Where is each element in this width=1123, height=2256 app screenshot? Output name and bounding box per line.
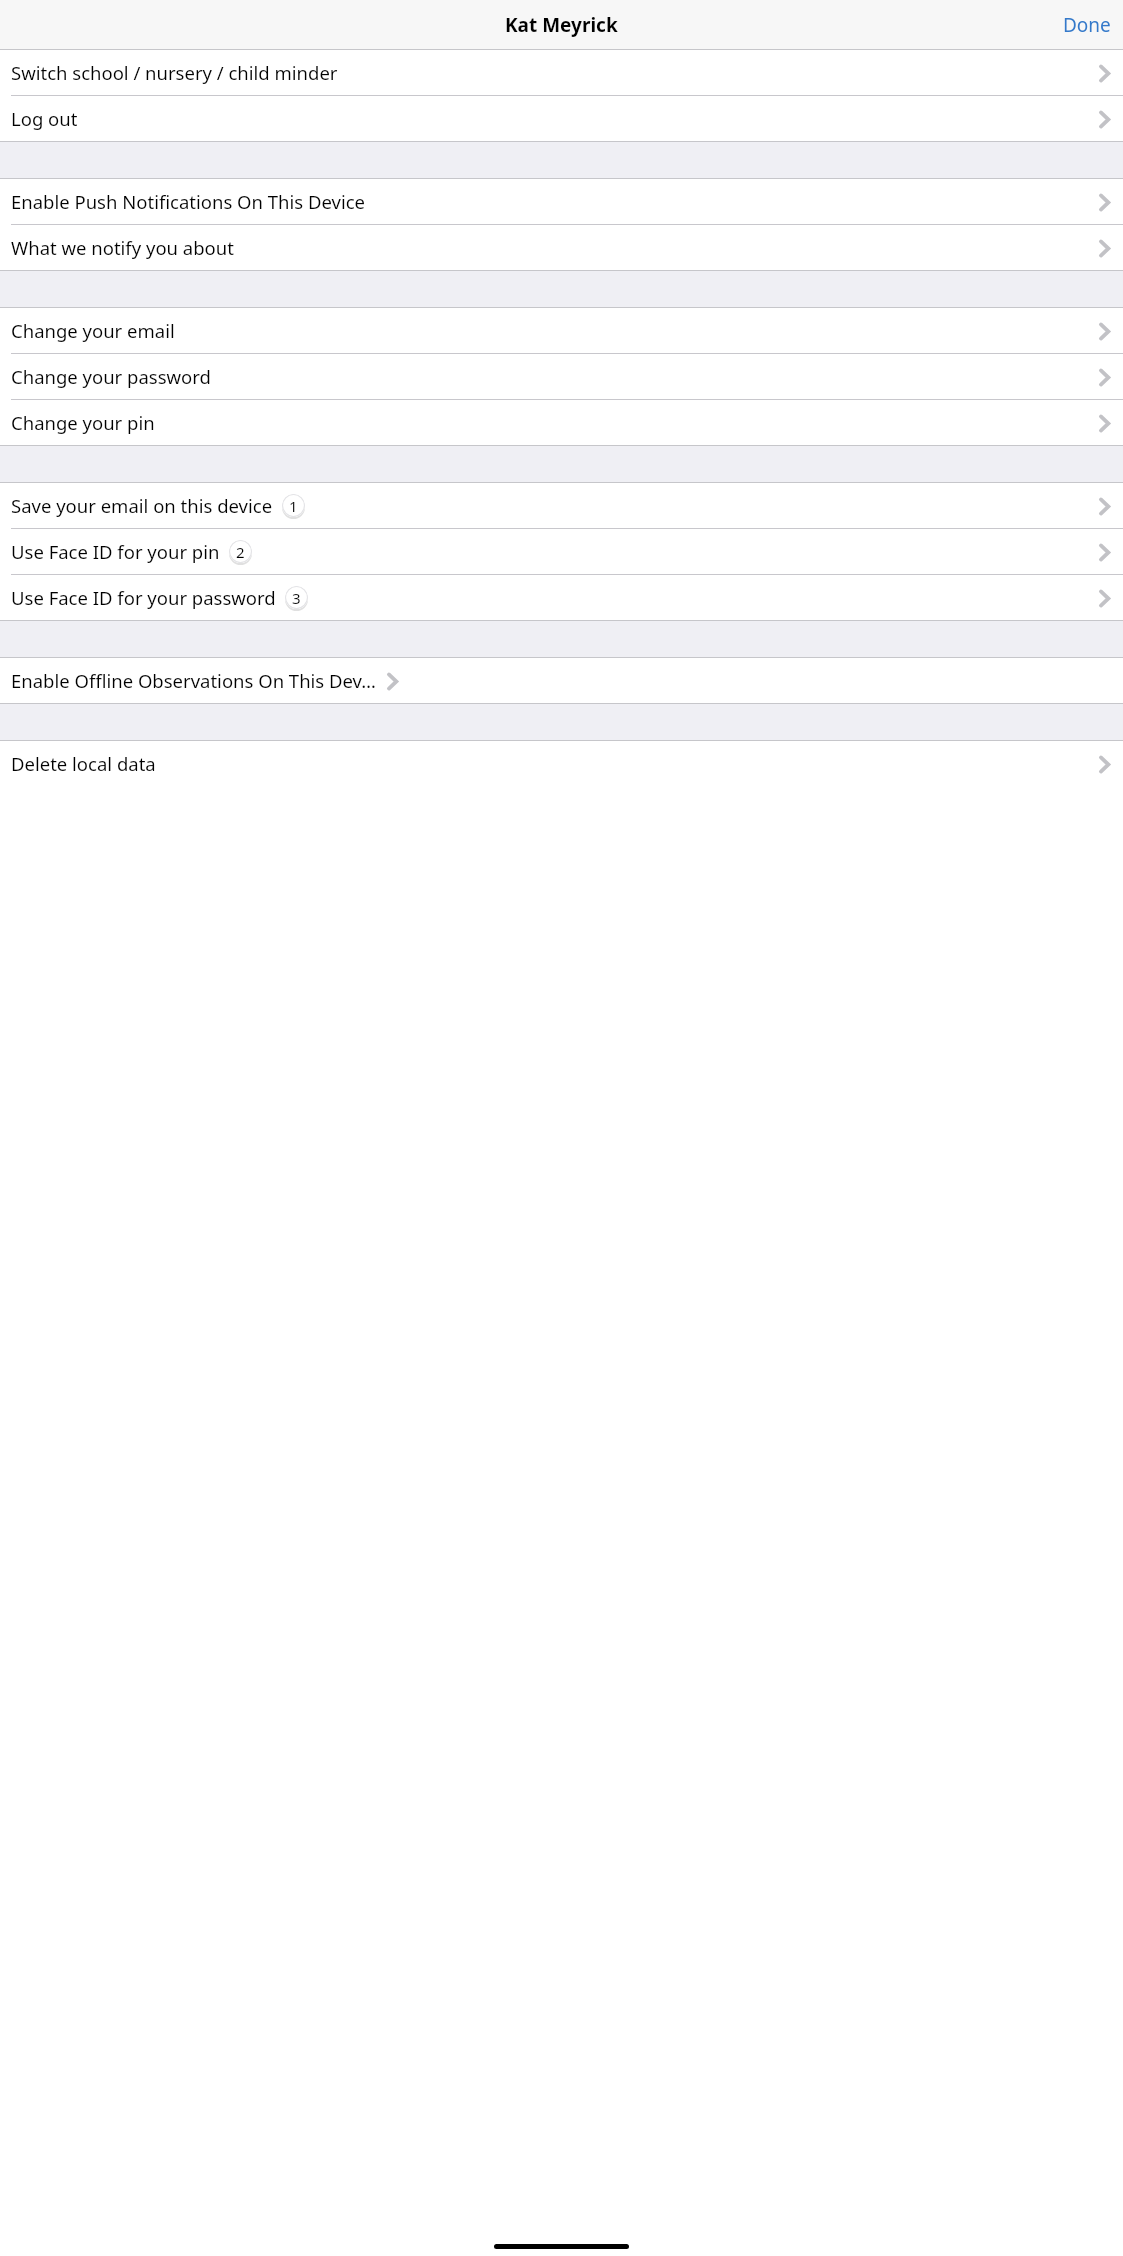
button[interactable]: Change your email — [0, 308, 1123, 353]
other: Open — [1094, 106, 1114, 132]
button[interactable]: Enable Push Notifications On This Device — [0, 179, 1123, 224]
other: Open — [1094, 318, 1114, 344]
button[interactable]: Enable Offline Observations On This Dev… — [0, 658, 1123, 703]
button[interactable]: Use Face ID for your pin — [0, 529, 1123, 574]
staticText: Log out — [11, 106, 78, 131]
staticText: Change your pin — [11, 410, 155, 435]
button[interactable]: Done — [1051, 2, 1123, 48]
button[interactable]: Change your password — [0, 354, 1123, 399]
staticText: What we notify you about — [11, 235, 234, 260]
other: Open — [1094, 493, 1114, 519]
staticText: Enable Push Notifications On This Device — [11, 189, 365, 214]
staticText: 2 — [236, 542, 245, 562]
other: Open — [382, 668, 402, 694]
other: Open — [1094, 189, 1114, 215]
staticText: Use Face ID for your pin — [11, 539, 220, 564]
staticText: 3 — [292, 588, 301, 608]
other: Open — [1094, 539, 1114, 565]
staticText: Done — [1063, 12, 1111, 38]
button[interactable]: Switch school / nursery / child minder — [0, 50, 1123, 95]
other: Open — [1094, 751, 1114, 777]
staticText: Delete local data — [11, 751, 156, 776]
staticText: Save your email on this device — [11, 493, 273, 518]
staticText: 1 — [289, 496, 298, 516]
staticText: Enable Offline Observations On This Dev… — [11, 668, 376, 693]
other: Open — [1094, 60, 1114, 86]
other: Open — [1094, 235, 1114, 261]
button[interactable]: Use Face ID for your password — [0, 575, 1123, 620]
staticText: Kat Meyrick — [505, 12, 618, 38]
staticText: Switch school / nursery / child minder — [11, 60, 338, 85]
staticText: Use Face ID for your password — [11, 585, 276, 610]
button[interactable]: Delete local data — [0, 741, 1123, 786]
staticText: Change your email — [11, 318, 175, 343]
button[interactable]: Change your pin — [0, 400, 1123, 445]
other: Open — [1094, 410, 1114, 436]
other: Open — [1094, 585, 1114, 611]
other: Open — [1094, 364, 1114, 390]
button[interactable]: What we notify you about — [0, 225, 1123, 270]
staticText: Change your password — [11, 364, 211, 389]
button[interactable]: Log out — [0, 96, 1123, 141]
button[interactable]: Save your email on this device — [0, 483, 1123, 528]
